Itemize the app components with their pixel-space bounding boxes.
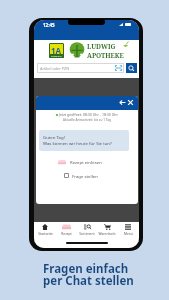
button[interactable]: Menü [118, 223, 138, 235]
staticText: 1A [51, 45, 62, 56]
staticText: Jetzt geöffnet: 08:30 Uhr - 18:30 Uhr [59, 112, 118, 117]
button[interactable]: Rezept einlösen [58, 157, 102, 166]
staticText: Frage stellen [72, 173, 98, 179]
staticText: Menü [124, 231, 133, 235]
button[interactable]: Startseite [35, 223, 55, 235]
button[interactable]: Schließen [126, 98, 135, 107]
staticText: LUDWIG [87, 42, 116, 51]
staticText: Fragen einfach per Chat stellen [43, 261, 134, 288]
staticText: Guten Tag! [43, 134, 65, 140]
button[interactable]: Zurück [118, 98, 127, 107]
button[interactable]: Warenkorb [97, 223, 117, 235]
staticText: Artikel oder PZN [40, 66, 115, 71]
staticText: Sortiment [79, 231, 95, 235]
staticText: Rezept einlösen [70, 159, 102, 165]
button[interactable]: Sortiment [77, 223, 97, 235]
button[interactable]: Suchen [126, 63, 137, 73]
staticText: APOTHEKE [87, 51, 124, 58]
button[interactable]: Artikel oder PZN [40, 63, 122, 73]
staticText: SANIERUNG [51, 55, 62, 57]
button[interactable]: Frage stellen [64, 171, 98, 180]
staticText: Was können wir heute für Sie tun? [43, 140, 112, 146]
staticText: Startseite [38, 231, 53, 235]
button[interactable]: Rezept [56, 223, 76, 235]
staticText: Rezept [61, 231, 72, 235]
staticText: Aktuelle Antwortzeit: bis zu 1 Tag [63, 118, 111, 122]
staticText: Warenkorb [98, 231, 116, 235]
staticText: 12:45 [43, 22, 55, 28]
